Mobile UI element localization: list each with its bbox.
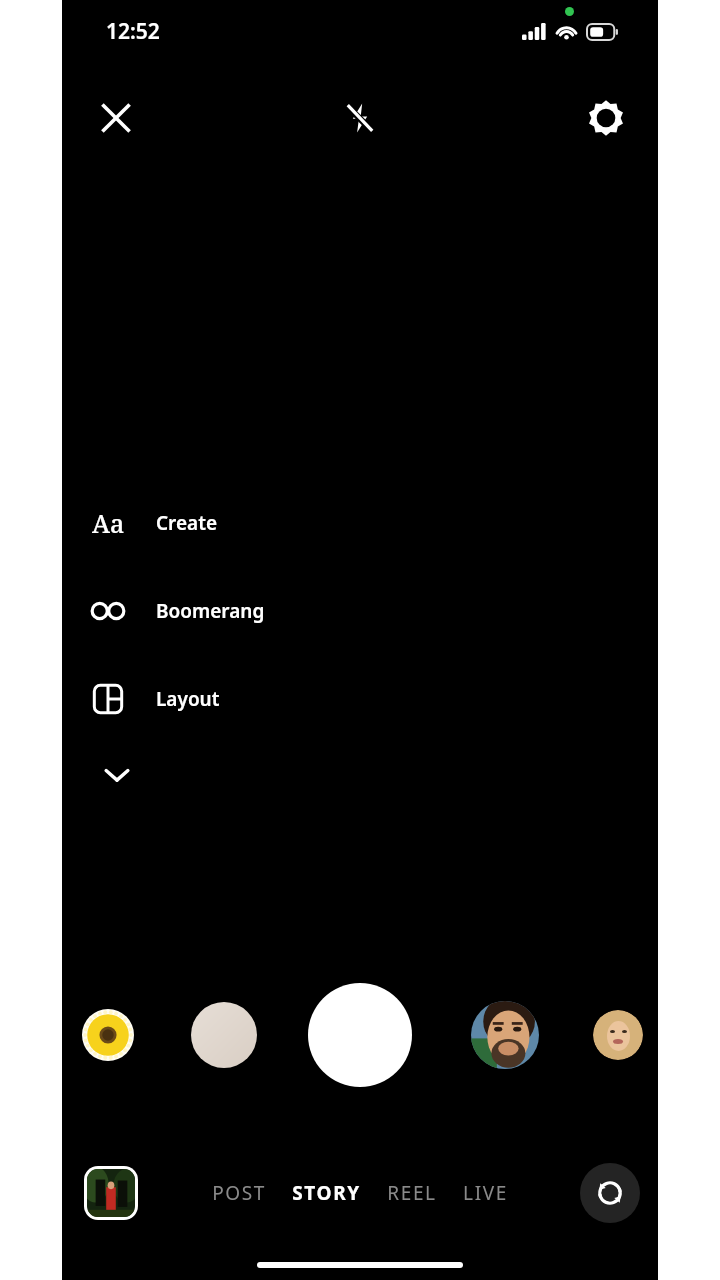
staticText: Aa bbox=[92, 506, 125, 540]
button[interactable]: POST bbox=[208, 1172, 270, 1214]
staticText: POST bbox=[212, 1180, 266, 1206]
staticText: LIVE bbox=[463, 1180, 508, 1206]
button[interactable]: Close bbox=[84, 86, 148, 150]
button[interactable]: REEL bbox=[383, 1172, 441, 1214]
button[interactable]: Effect bbox=[190, 1001, 258, 1069]
staticText: STORY bbox=[292, 1180, 361, 1206]
button[interactable]: Settings bbox=[574, 86, 638, 150]
button[interactable]: Switch camera bbox=[580, 1163, 640, 1223]
button[interactable]: Aa bbox=[84, 492, 218, 554]
button[interactable]: Flash off bbox=[328, 86, 392, 150]
button[interactable]: Sunflower effect bbox=[80, 1007, 136, 1063]
button[interactable]: Layout bbox=[84, 668, 220, 730]
staticText: REEL bbox=[387, 1180, 437, 1206]
button[interactable]: LIVE bbox=[459, 1172, 512, 1214]
button[interactable]: Face effect bbox=[470, 1000, 540, 1070]
staticText: Layout bbox=[156, 686, 220, 712]
staticText: Create bbox=[156, 510, 218, 536]
button[interactable]: More effects bbox=[90, 748, 144, 802]
staticText: Boomerang bbox=[156, 598, 265, 624]
button[interactable]: Face effect bbox=[592, 1009, 644, 1061]
staticText: 12:52 bbox=[106, 17, 160, 46]
button[interactable]: Boomerang bbox=[84, 580, 265, 642]
button[interactable]: STORY bbox=[288, 1172, 365, 1214]
button[interactable]: Capture bbox=[308, 983, 412, 1087]
button[interactable]: Gallery bbox=[84, 1166, 138, 1220]
